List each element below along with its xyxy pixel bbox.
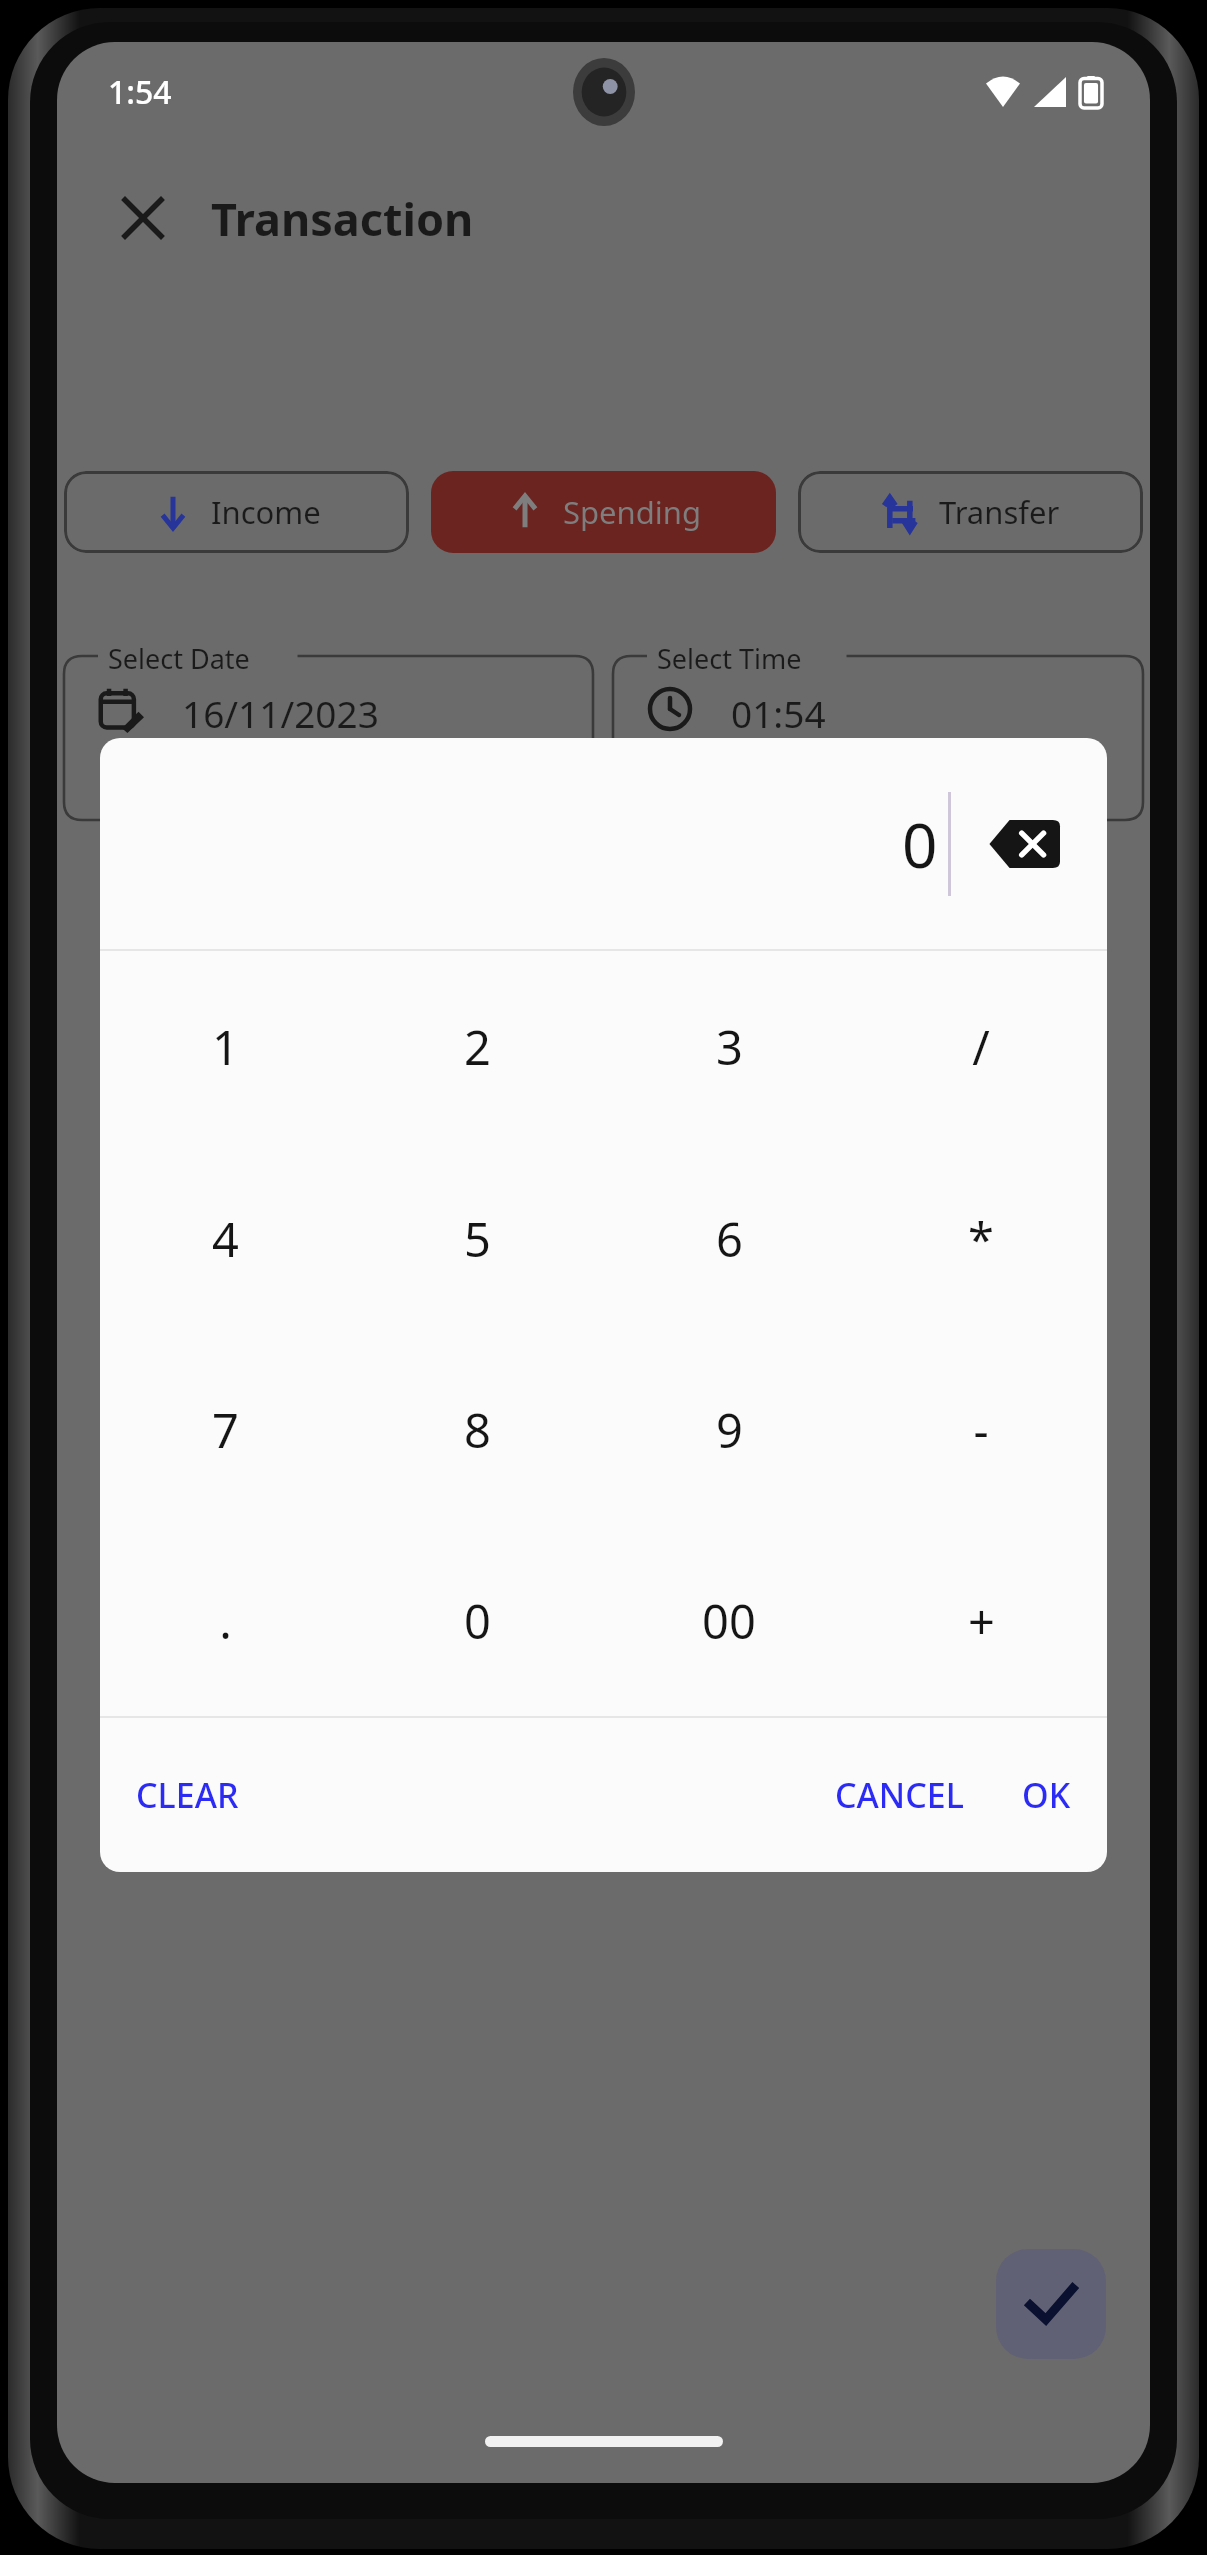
button[interactable]: -: [855, 1334, 1107, 1525]
staticText: 0: [464, 1589, 491, 1653]
button[interactable]: +: [855, 1525, 1107, 1716]
staticText: *: [968, 1207, 994, 1271]
staticText: 0: [902, 802, 938, 886]
staticText: 5: [464, 1207, 491, 1271]
button[interactable]: .: [100, 1525, 351, 1716]
button[interactable]: Close: [107, 182, 179, 254]
button[interactable]: 1: [100, 951, 351, 1143]
staticText: /: [972, 1015, 990, 1079]
staticText: Select Date: [108, 640, 250, 677]
staticText: 1:54: [108, 70, 172, 114]
staticText: 6: [716, 1207, 743, 1271]
button[interactable]: CANCEL: [813, 1756, 986, 1834]
staticText: Spending: [563, 491, 702, 533]
button[interactable]: Backspace: [985, 814, 1063, 874]
button[interactable]: 00: [603, 1525, 855, 1716]
button[interactable]: 8: [351, 1334, 603, 1525]
staticText: CANCEL: [835, 1772, 964, 1818]
button[interactable]: Save transaction: [996, 2249, 1106, 2359]
staticText: Select Time: [657, 640, 802, 677]
staticText: 7: [212, 1398, 239, 1462]
button[interactable]: 7: [100, 1334, 351, 1525]
button[interactable]: 4: [100, 1143, 351, 1334]
staticText: 8: [464, 1398, 491, 1462]
button[interactable]: 3: [603, 951, 855, 1143]
button[interactable]: Transfer: [798, 471, 1143, 553]
button[interactable]: 6: [603, 1143, 855, 1334]
staticText: 2: [464, 1015, 491, 1079]
button[interactable]: CLEAR: [114, 1756, 261, 1834]
button[interactable]: 2: [351, 951, 603, 1143]
button[interactable]: *: [855, 1143, 1107, 1334]
staticText: Transfer: [939, 491, 1060, 533]
button[interactable]: Spending: [431, 471, 776, 553]
staticText: Transaction: [211, 188, 474, 249]
staticText: +: [968, 1589, 995, 1653]
staticText: 01:54: [731, 688, 826, 738]
staticText: OK: [1022, 1772, 1071, 1818]
button[interactable]: /: [855, 951, 1107, 1143]
button[interactable]: 5: [351, 1143, 603, 1334]
staticText: Income: [211, 491, 321, 533]
button[interactable]: Income: [64, 471, 409, 553]
button[interactable]: 0: [351, 1525, 603, 1716]
staticText: 16/11/2023: [182, 688, 379, 738]
button[interactable]: OK: [1000, 1756, 1093, 1834]
staticText: 3: [716, 1015, 743, 1079]
button[interactable]: 9: [603, 1334, 855, 1525]
staticText: -: [973, 1398, 989, 1462]
staticText: CLEAR: [136, 1772, 239, 1818]
staticText: 00: [702, 1589, 756, 1653]
staticText: .: [219, 1589, 232, 1653]
staticText: 1: [212, 1015, 239, 1079]
staticText: 4: [212, 1207, 239, 1271]
staticText: 9: [716, 1398, 743, 1462]
